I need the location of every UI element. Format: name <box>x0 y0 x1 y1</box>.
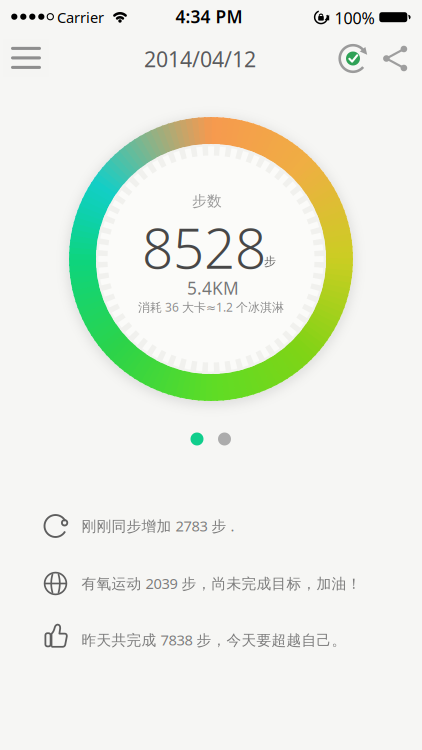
button[interactable]: Menu <box>3 39 49 77</box>
staticText: 步数 <box>192 192 222 210</box>
staticText: 步 <box>264 254 276 269</box>
staticText: 100% <box>334 7 374 28</box>
staticText: 刚刚同步增加 2783 步 . <box>81 516 234 535</box>
staticText: 有氧运动 2039 步，尚未完成目标，加油！ <box>81 573 361 593</box>
button[interactable]: Sync <box>335 40 371 76</box>
staticText: 消耗 36 大卡≈1.2 个冰淇淋 <box>138 299 284 315</box>
staticText: 8528 <box>142 211 266 284</box>
staticText: 4:34 PM <box>175 5 242 28</box>
staticText: 5.4KM <box>187 276 239 299</box>
staticText: 昨天共完成 7838 步，今天要超越自己。 <box>81 630 346 649</box>
staticText: 2014/04/12 <box>144 45 256 73</box>
staticText: Carrier <box>57 8 104 27</box>
button[interactable]: Share <box>378 40 410 76</box>
